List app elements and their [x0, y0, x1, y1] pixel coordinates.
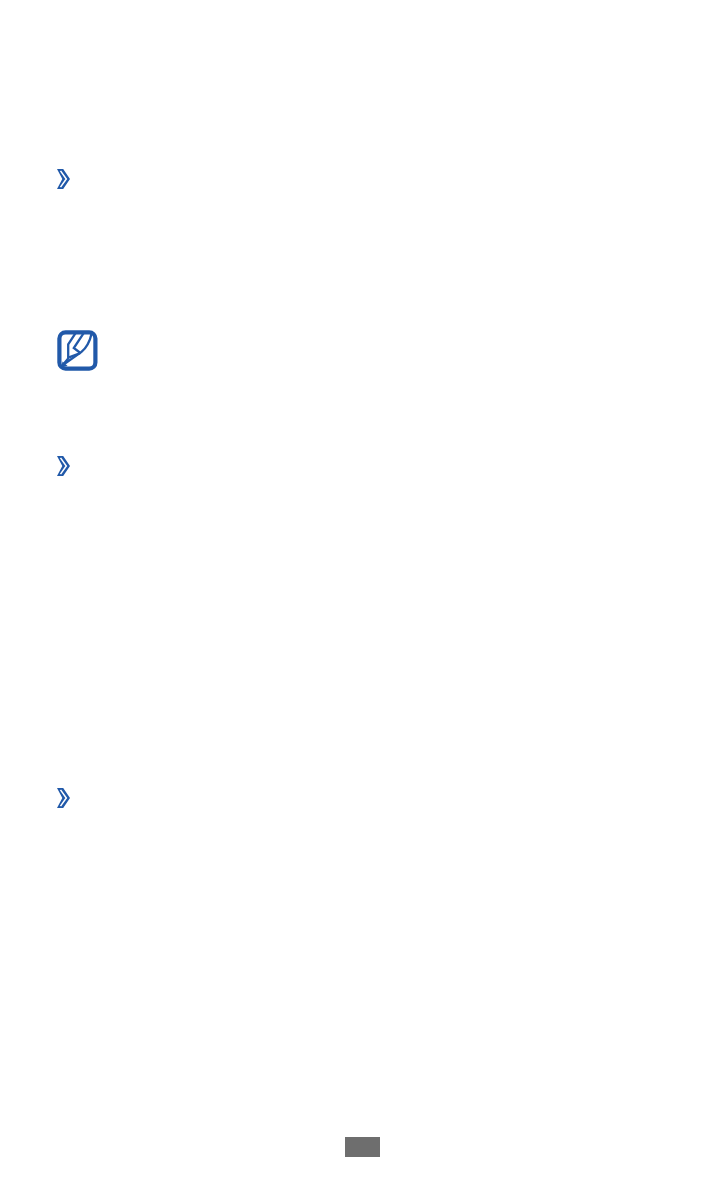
button[interactable]: Note: [57, 330, 99, 372]
button[interactable]: Section: [57, 788, 71, 809]
button[interactable]: Section: [57, 456, 71, 477]
button[interactable]: Section: [57, 169, 71, 190]
